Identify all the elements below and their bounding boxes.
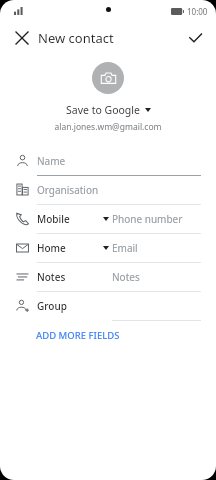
button[interactable]: Save contact: [181, 24, 209, 52]
button[interactable]: Phone: [0, 205, 216, 234]
staticText: Email: [112, 241, 138, 255]
staticText: Home: [37, 241, 66, 255]
button[interactable]: Organisation: [0, 176, 216, 205]
staticText: Group: [37, 299, 67, 313]
staticText: ADD MORE FIELDS: [36, 329, 120, 342]
staticText: Notes: [37, 270, 66, 284]
button[interactable]: Email: [0, 234, 216, 263]
staticText: Notes: [112, 270, 140, 284]
staticText: Phone number: [112, 212, 183, 226]
button[interactable]: Group: [0, 292, 216, 321]
button[interactable]: Add photo: [92, 62, 124, 94]
staticText: New contact: [38, 29, 114, 47]
button[interactable]: Notes: [0, 263, 216, 292]
staticText: Organisation: [37, 183, 99, 197]
button[interactable]: Close: [8, 24, 36, 52]
staticText: Name: [37, 154, 66, 168]
button[interactable]: Save to Google: [62, 102, 155, 118]
staticText: Save to Google: [66, 103, 140, 117]
staticText: 10:00: [187, 6, 208, 17]
button[interactable]: Name: [0, 147, 216, 176]
staticText: Mobile: [37, 212, 70, 226]
staticText: alan.jones.wm@gmail.com: [54, 121, 162, 133]
button[interactable]: ADD MORE FIELDS: [0, 321, 216, 349]
